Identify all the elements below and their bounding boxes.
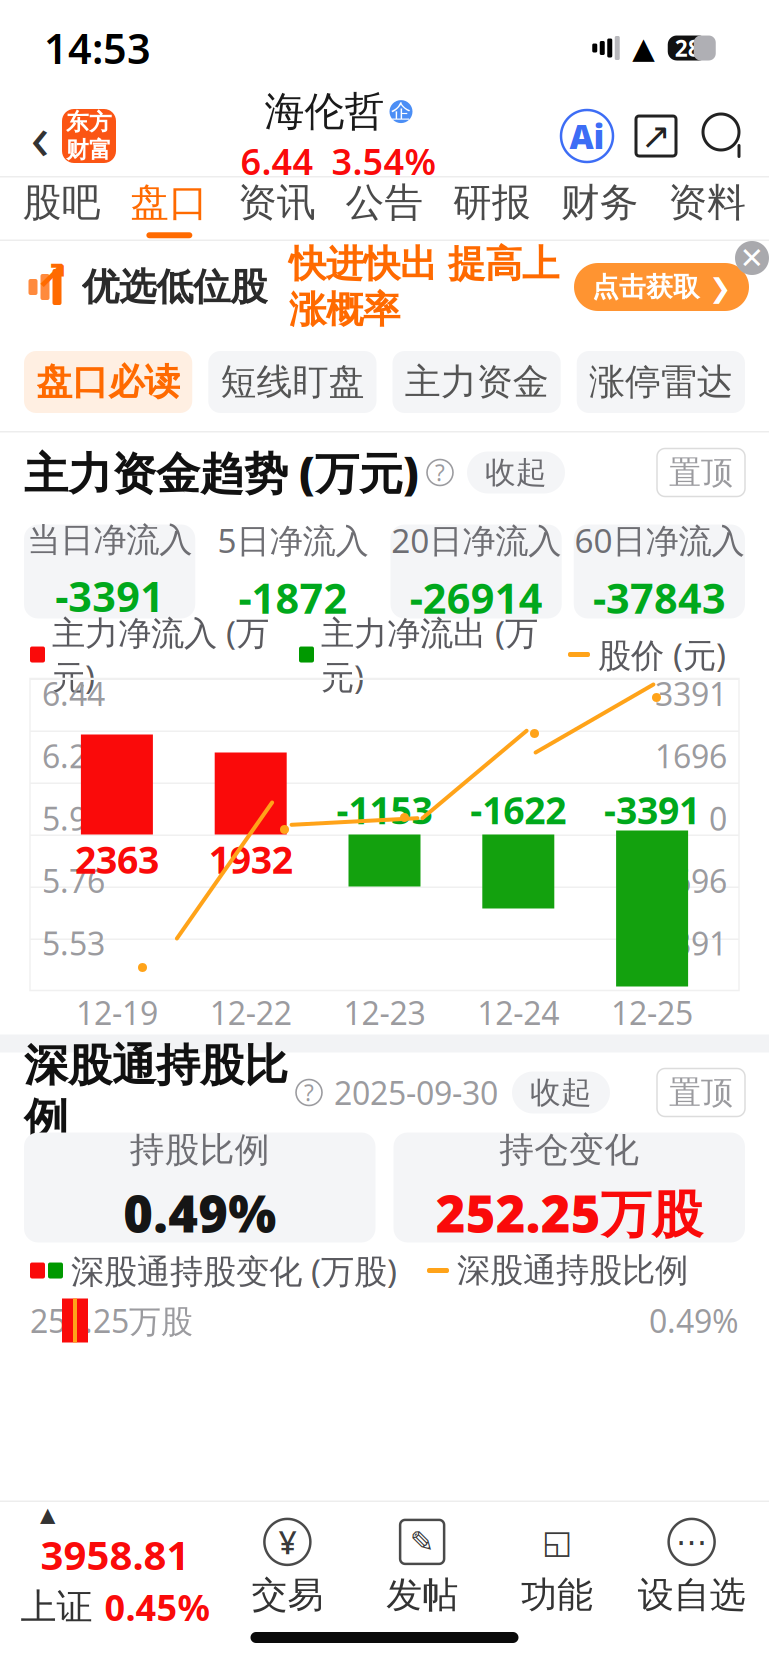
button[interactable]: ✎ [355,1512,490,1622]
staticText: 3958.81 [40,1528,189,1581]
button[interactable]: 公告 [331,178,438,238]
staticText: 财富 [66,136,112,164]
staticText: -1872 [238,570,347,625]
staticText: ▲ [40,1503,55,1526]
staticText: 14:53 [44,21,151,75]
button[interactable]: 持股比例 [24,1132,375,1242]
staticText: -3391 [645,922,727,964]
button[interactable]: ◱ [489,1512,624,1622]
staticText: ‹ [30,95,49,177]
button[interactable]: Search [699,110,751,162]
button[interactable]: 财务 [546,178,653,238]
button[interactable]: 资讯 [223,178,331,238]
staticText: 深股通持股变化 (万股) [71,1248,397,1293]
staticText: 0 [709,797,727,840]
staticText: 功能 [521,1573,593,1617]
button[interactable]: 持仓变化 [393,1132,745,1242]
staticText: 盘口必读 [36,360,180,404]
staticText: 收起 [485,454,547,491]
button[interactable]: 收起 [512,1071,610,1113]
staticText: 5.53 [42,922,105,964]
staticText: ▼ [250,611,273,644]
staticText: 20日净流入 [391,518,561,562]
staticText: ⋯ [676,1524,708,1560]
staticText: 主力资金趋势 (万元) [24,443,419,502]
staticText: ◱ [542,1524,572,1560]
button[interactable]: 股吧 [8,178,116,238]
button[interactable]: Back [18,104,62,168]
button[interactable]: AI 助手 [561,110,613,162]
staticText: 持股比例 [130,1129,270,1171]
staticText: 5日净流入 [217,518,368,562]
button[interactable]: 盘口必读 [24,351,192,413]
button[interactable]: 60日净流入 [574,524,745,618]
staticText: 5.76 [42,859,105,902]
button[interactable]: ▲ [10,1512,220,1622]
staticText: 252.25万股 [30,1299,193,1342]
staticText: 资料 [668,179,746,226]
staticText: 研报 [453,179,531,226]
staticText: 优选低位股 [82,264,267,310]
staticText: ¥ [278,1521,296,1563]
staticText: 0.49% [649,1299,739,1342]
staticText: 6.44 [42,672,105,715]
staticText: ↗ [35,253,69,299]
button[interactable]: ¥ [220,1512,355,1622]
staticText: 置顶 [669,1073,733,1112]
staticText: 0.49% [123,1179,276,1246]
staticText: -1622 [470,785,566,834]
staticText: 置顶 [669,453,733,492]
staticText: ▲ [632,31,655,65]
button[interactable]: 收起 [467,451,565,493]
button[interactable]: 当日净流入 [24,524,195,618]
staticText: 主力净流入 (万元) [52,610,269,699]
staticText: 发帖 [386,1573,458,1617]
staticText: 28 [675,33,701,63]
staticText: 设自选 [638,1573,746,1617]
button[interactable]: 20日净流入 [390,524,562,618]
staticText: 当日净流入 [27,520,192,560]
button[interactable]: Share [633,113,679,159]
staticText: 3391 [655,672,727,715]
staticText: 企 [391,99,411,124]
button[interactable]: 资料 [653,178,761,238]
staticText: 海伦哲 [264,87,384,136]
button[interactable]: 主力资金 [392,351,561,413]
staticText: 短线盯盘 [220,360,364,404]
staticText: 点击获取 ❯ [592,271,731,303]
staticText: ✕ [739,241,764,275]
staticText: 主力净流出 (万元) [321,610,538,699]
staticText: 2025-09-30 [334,1071,498,1114]
staticText: 盘口 [130,179,208,226]
staticText: 12-22 [210,991,292,1034]
button[interactable]: 盘口 [116,178,223,238]
button[interactable]: 研报 [438,178,546,238]
staticText: 东方 [66,108,112,136]
button[interactable]: 短线盯盘 [208,351,376,413]
staticText: 资讯 [238,179,316,226]
staticText: 上证 [20,1585,92,1629]
staticText: Ai [569,114,604,158]
staticText: -26914 [410,570,543,625]
staticText: 12-19 [76,991,158,1034]
button[interactable]: ↗ [0,241,769,333]
staticText: 主力资金 [405,360,549,404]
staticText: ? [435,457,445,487]
staticText: 持仓变化 [499,1129,639,1171]
staticText: -1153 [336,785,432,834]
staticText: -1696 [645,859,727,902]
button[interactable]: 东方财富 [62,109,116,163]
button[interactable]: 涨停雷达 [577,351,745,413]
staticText: 股吧 [23,179,101,226]
button[interactable]: 5日净流入 [207,517,378,625]
staticText: 公告 [345,179,423,226]
staticText: 12-25 [611,991,693,1034]
staticText: -37843 [593,570,726,625]
button[interactable]: 置顶 [657,1068,745,1116]
button[interactable]: 置顶 [657,448,745,496]
button[interactable]: ⋯ [624,1512,759,1622]
staticText: 0.45% [104,1583,209,1631]
staticText: 股价 (元) [598,632,726,677]
staticText: -3391 [55,568,164,623]
staticText: 深股通持股比例 [457,1250,688,1291]
